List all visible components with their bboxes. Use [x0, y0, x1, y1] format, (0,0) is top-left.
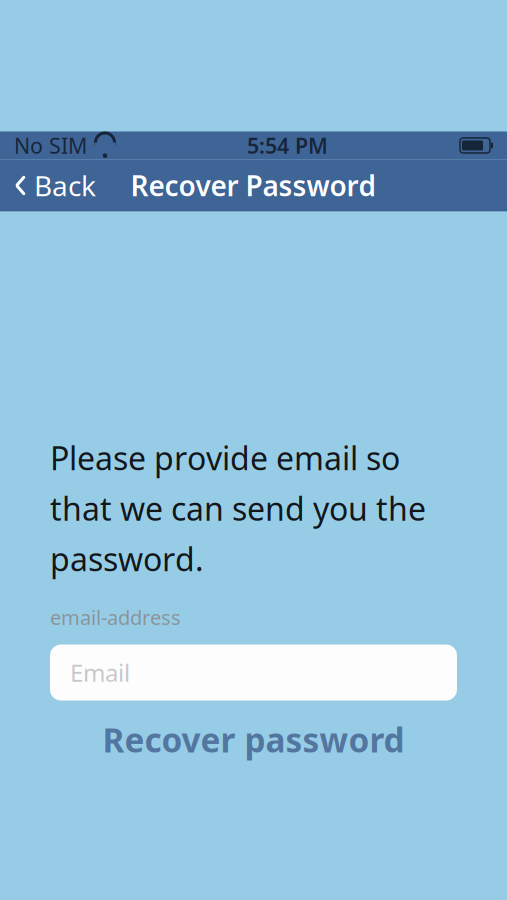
button[interactable]: Email [50, 644, 457, 700]
button[interactable]: Recover password [50, 718, 457, 760]
staticText: Email [70, 657, 130, 688]
staticText: Back [34, 167, 96, 204]
staticText: Recover password [102, 717, 404, 762]
staticText: email-address [50, 604, 181, 631]
staticText: Recover Password [130, 167, 376, 204]
staticText: Please provide email so that we can send… [50, 436, 426, 580]
staticText: No SIM [14, 131, 87, 160]
button[interactable]: Back [0, 159, 108, 211]
staticText: 5:54 PM [247, 131, 328, 160]
